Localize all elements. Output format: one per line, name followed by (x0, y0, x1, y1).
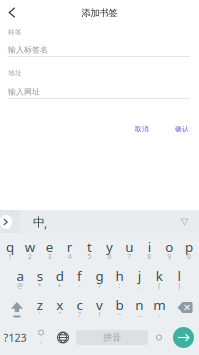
button[interactable]: h (109, 262, 129, 291)
button[interactable]: r (60, 233, 80, 262)
staticText: 9 (167, 252, 171, 261)
staticText: 6 (107, 252, 111, 261)
staticText: 地址 (8, 69, 22, 77)
button[interactable]: Period (150, 320, 168, 355)
button[interactable]: s (30, 262, 50, 291)
button[interactable]: w (20, 233, 40, 262)
staticText: ; (138, 281, 140, 290)
staticText: / (98, 281, 100, 290)
staticText: ! (98, 310, 100, 319)
staticText: , (44, 215, 47, 231)
staticText: v (96, 296, 103, 314)
staticText: y (106, 238, 113, 256)
staticText: p (185, 238, 193, 256)
staticText: @ (17, 281, 23, 290)
staticText: 1 (8, 252, 12, 261)
staticText: o (165, 238, 173, 256)
staticText: … (137, 310, 142, 319)
staticText: 3 (48, 252, 52, 261)
button[interactable]: i (139, 233, 159, 262)
button[interactable]: 取消 (129, 120, 155, 138)
staticText: u (125, 238, 133, 256)
button[interactable]: y (99, 233, 119, 262)
button[interactable]: x (50, 291, 70, 320)
staticText: ( (158, 281, 160, 290)
staticText: g (95, 267, 103, 285)
button[interactable]: o (159, 233, 179, 262)
button[interactable]: f (70, 262, 89, 291)
button[interactable]: Change keyboard (52, 320, 74, 355)
staticText: 添加书签 (81, 7, 117, 19)
staticText: f (77, 267, 82, 285)
staticText: 0 (187, 252, 191, 261)
staticText: + (58, 281, 62, 290)
staticText: 标签 (8, 28, 22, 36)
staticText: c (77, 296, 83, 314)
button[interactable]: q (0, 233, 20, 262)
button[interactable]: Hide keyboard (176, 213, 193, 231)
staticText: - (79, 281, 81, 290)
staticText: l (178, 267, 181, 285)
staticText: ' (39, 310, 41, 319)
button[interactable]: Shift (0, 291, 30, 320)
staticText: ?123 (3, 330, 26, 345)
button[interactable]: n (129, 291, 149, 320)
staticText: i (148, 238, 151, 256)
staticText: k (156, 267, 163, 285)
button[interactable]: ?123 (0, 320, 30, 355)
button[interactable]: 拼音 (76, 330, 148, 345)
button[interactable]: m (149, 291, 169, 320)
staticText: h (115, 267, 123, 285)
staticText: j (138, 267, 141, 285)
button[interactable]: More candidates (0, 215, 12, 229)
button[interactable]: e (40, 233, 60, 262)
staticText: 5 (87, 252, 91, 261)
staticText: 取消 (135, 125, 149, 133)
staticText: ， (37, 335, 45, 345)
staticText: ? (78, 310, 81, 319)
button[interactable]: l (169, 262, 189, 291)
staticText: 2 (28, 252, 32, 261)
staticText: t (87, 238, 92, 256)
button[interactable]: 确认 (169, 120, 195, 138)
button[interactable]: t (80, 233, 99, 262)
button[interactable]: z (30, 291, 50, 320)
button[interactable]: u (119, 233, 139, 262)
staticText: 8 (147, 252, 151, 261)
staticText: b (115, 296, 123, 314)
staticText: d (56, 267, 64, 285)
button[interactable]: g (89, 262, 109, 291)
staticText: ) (178, 281, 180, 290)
staticText: 输入网址 (8, 87, 40, 97)
staticText: ~ (117, 310, 121, 319)
staticText: n (135, 296, 143, 314)
button[interactable]: d (50, 262, 70, 291)
button[interactable]: p (179, 233, 199, 262)
button[interactable]: Emoji (30, 320, 52, 355)
button[interactable]: a (10, 262, 30, 291)
staticText: 4 (68, 252, 72, 261)
staticText: a (16, 267, 23, 285)
staticText: 输入标签名 (8, 45, 48, 55)
staticText: r (67, 238, 73, 256)
staticText: 确认 (175, 125, 189, 133)
button[interactable]: Enter (168, 320, 199, 355)
staticText: * (38, 281, 42, 290)
button[interactable]: b (109, 291, 129, 320)
staticText: 拼音 (103, 332, 121, 343)
staticText: " (58, 310, 61, 319)
button[interactable]: k (149, 262, 169, 291)
staticText: : (118, 281, 120, 290)
staticText: w (25, 238, 35, 256)
staticText: m (153, 296, 165, 314)
button[interactable]: c (70, 291, 89, 320)
staticText: 中 (33, 215, 45, 230)
button[interactable]: Back (0, 1, 24, 24)
staticText: x (56, 296, 63, 314)
staticText: - (158, 310, 160, 319)
button[interactable]: v (89, 291, 109, 320)
button[interactable]: Backspace (169, 291, 199, 320)
button[interactable]: j (129, 262, 149, 291)
staticText: q (6, 238, 14, 256)
staticText: s (37, 267, 43, 285)
